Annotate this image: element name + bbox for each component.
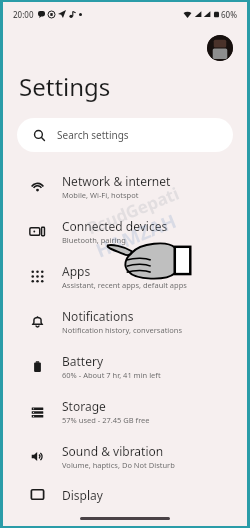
button[interactable]: Storage xyxy=(3,389,247,434)
staticText: Sound & vibration xyxy=(62,443,164,459)
staticText: HAMZAH xyxy=(92,208,181,263)
staticText: Network & internet xyxy=(62,173,171,189)
staticText: Volume, haptics, Do Not Disturb xyxy=(62,460,175,470)
button[interactable]: Account avatar xyxy=(207,35,233,61)
staticText: Storage xyxy=(62,398,106,414)
staticText: Display xyxy=(62,487,103,503)
staticText: Notification history, conversations xyxy=(62,325,183,335)
staticText: Apps xyxy=(62,263,91,279)
staticText: Mobile, Wi-Fi, hotspot xyxy=(62,190,139,200)
staticText: 60% xyxy=(221,9,237,20)
staticText: 20:00 xyxy=(13,9,34,20)
staticText: Connected devices xyxy=(62,218,168,234)
button[interactable]: Apps xyxy=(3,254,247,299)
button[interactable]: Notifications xyxy=(3,299,247,344)
staticText: Settings xyxy=(19,70,111,103)
staticText: Assistant, recent apps, default apps xyxy=(62,280,187,290)
staticText: 60% - About 7 hr, 41 min left xyxy=(62,370,161,380)
button[interactable]: Connected devices xyxy=(3,209,247,254)
staticText: Bluetooth, pairing xyxy=(62,235,126,245)
staticText: Search settings xyxy=(57,128,129,142)
button[interactable]: Network & internet xyxy=(3,164,247,209)
button[interactable]: Search settings xyxy=(17,118,233,152)
button[interactable]: Display xyxy=(3,479,247,510)
staticText: Battery xyxy=(62,353,104,369)
staticText: RsudGepati xyxy=(83,181,183,239)
button[interactable]: Battery xyxy=(3,344,247,389)
staticText: 57% used - 27.45 GB free xyxy=(62,415,150,425)
staticText: Notifications xyxy=(62,308,134,324)
button[interactable]: Sound & vibration xyxy=(3,434,247,479)
